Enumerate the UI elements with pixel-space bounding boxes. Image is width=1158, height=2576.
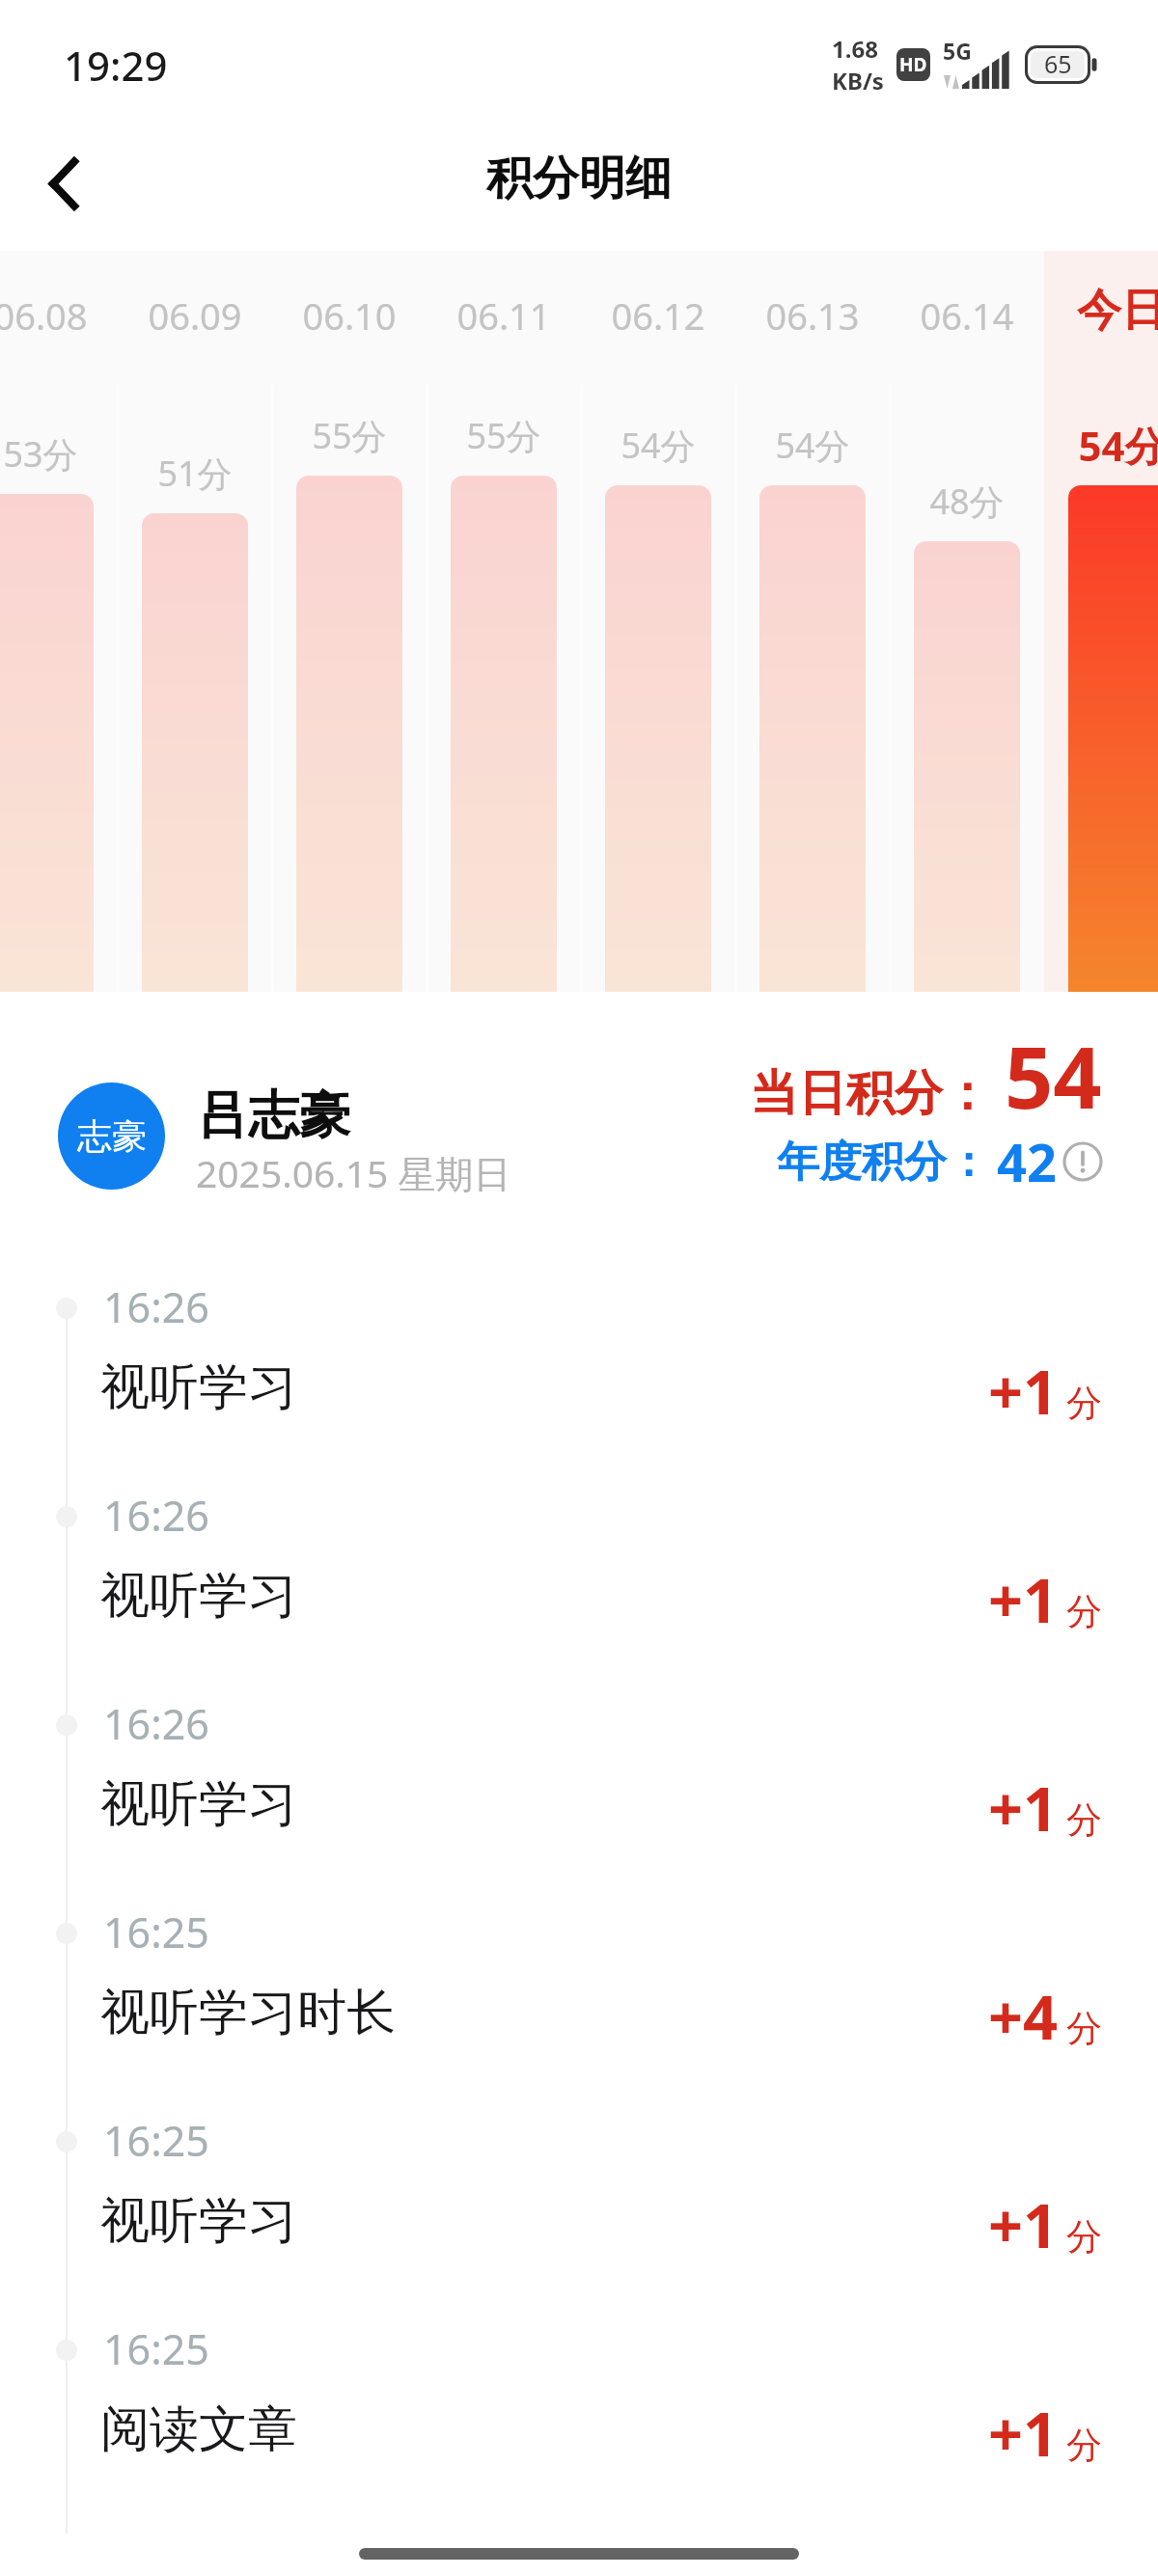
staticText: 48分: [929, 478, 1005, 525]
staticText: 年度积分：: [777, 1136, 989, 1189]
staticText: 55分: [312, 412, 387, 459]
staticText: +1: [988, 2183, 1059, 2266]
button[interactable]: [427, 251, 581, 992]
staticText: 视听学习时长: [100, 1982, 396, 2043]
staticText: 65: [1044, 47, 1072, 80]
staticText: 16:25: [103, 2112, 209, 2169]
staticText: 视听学习: [100, 1773, 297, 1835]
staticText: 06.14: [920, 290, 1014, 341]
staticText: 分: [1066, 1381, 1102, 1426]
staticText: 53分: [3, 430, 78, 478]
button[interactable]: [890, 251, 1044, 992]
staticText: HD: [899, 52, 927, 77]
staticText: 积分明细: [486, 150, 672, 207]
staticText: +1: [988, 1767, 1059, 1850]
staticText: 06.12: [611, 290, 705, 341]
staticText: 5G: [943, 36, 972, 66]
button[interactable]: Info: [1062, 1141, 1103, 1182]
staticText: 06.13: [765, 290, 860, 341]
button[interactable]: 16:25: [0, 2113, 1158, 2321]
staticText: 2025.06.15 星期日: [196, 1147, 511, 1198]
button[interactable]: [118, 251, 272, 992]
button[interactable]: [0, 251, 118, 992]
staticText: 分: [1066, 1589, 1102, 1634]
staticText: 19:29: [64, 38, 168, 93]
staticText: 阅读文章: [100, 2398, 297, 2460]
staticText: 今日: [1077, 283, 1158, 339]
staticText: 54分: [1078, 418, 1158, 473]
staticText: 51分: [157, 450, 233, 497]
staticText: 志豪: [77, 1114, 147, 1158]
staticText: 视听学习: [100, 2190, 297, 2252]
staticText: 视听学习: [100, 1565, 297, 1627]
button[interactable]: 16:26: [0, 1488, 1158, 1696]
staticText: 54: [1005, 1018, 1102, 1134]
button[interactable]: 16:25: [0, 1905, 1158, 2113]
button[interactable]: [735, 251, 890, 992]
button[interactable]: 16:25: [0, 2321, 1158, 2530]
button[interactable]: Back: [14, 134, 112, 233]
button[interactable]: [272, 251, 427, 992]
staticText: +1: [988, 1350, 1059, 1433]
button[interactable]: 16:26: [0, 1696, 1158, 1905]
staticText: 06.08: [0, 290, 88, 341]
staticText: 55分: [466, 412, 541, 459]
staticText: 06.09: [148, 290, 242, 341]
staticText: 分: [1066, 2423, 1102, 2468]
staticText: 分: [1066, 2214, 1102, 2260]
staticText: 当日积分：: [750, 1063, 991, 1124]
staticText: 分: [1066, 1797, 1102, 1843]
staticText: 视听学习: [100, 1357, 297, 1418]
staticText: 16:26: [103, 1487, 209, 1544]
staticText: 吕志豪: [197, 1083, 350, 1148]
staticText: 06.11: [456, 290, 551, 341]
staticText: 16:26: [103, 1278, 209, 1335]
staticText: 16:25: [103, 1904, 209, 1960]
staticText: 1.68: [832, 33, 878, 65]
staticText: +1: [988, 2392, 1059, 2475]
staticText: 54分: [775, 422, 850, 469]
staticText: +4: [988, 1975, 1059, 2058]
staticText: KB/s: [832, 65, 884, 96]
button[interactable]: 16:26: [0, 1279, 1158, 1488]
staticText: 42: [997, 1126, 1057, 1197]
staticText: 16:26: [103, 1695, 209, 1752]
staticText: +1: [988, 1558, 1059, 1641]
button[interactable]: [581, 251, 735, 992]
staticText: 06.10: [302, 290, 397, 341]
staticText: 16:25: [103, 2320, 209, 2377]
button[interactable]: [1044, 251, 1158, 992]
staticText: 分: [1066, 2006, 1102, 2051]
staticText: 54分: [620, 422, 696, 469]
